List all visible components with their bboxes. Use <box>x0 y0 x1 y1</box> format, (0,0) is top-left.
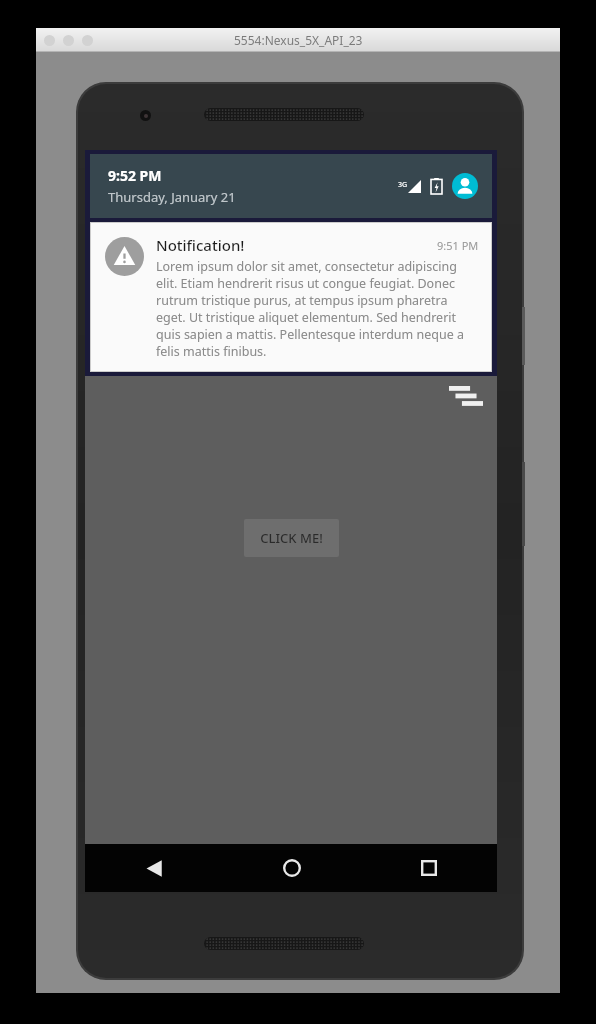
button[interactable]: Home <box>223 844 360 892</box>
button[interactable]: Recent apps <box>360 844 497 892</box>
staticText: Notification! <box>156 235 437 255</box>
button[interactable]: Clear all notifications <box>449 386 483 412</box>
button[interactable]: Minimize window <box>63 35 74 46</box>
button[interactable]: Back <box>85 844 223 892</box>
staticText: Lorem ipsum dolor sit amet, consectetur … <box>156 258 479 360</box>
staticText: 3G <box>398 180 408 190</box>
staticText: CLICK ME! <box>260 529 323 547</box>
button[interactable]: Maximize window <box>82 35 93 46</box>
button[interactable]: CLICK ME! <box>244 519 339 557</box>
staticText: 5554:Nexus_5X_API_23 <box>234 32 363 48</box>
staticText: 9:51 PM <box>437 238 479 253</box>
button[interactable]: Notification! <box>91 223 491 371</box>
staticText: 9:52 PM <box>108 166 162 185</box>
button[interactable]: Close window <box>44 35 55 46</box>
staticText: Thursday, January 21 <box>108 188 236 206</box>
button[interactable]: User profile <box>452 173 478 199</box>
